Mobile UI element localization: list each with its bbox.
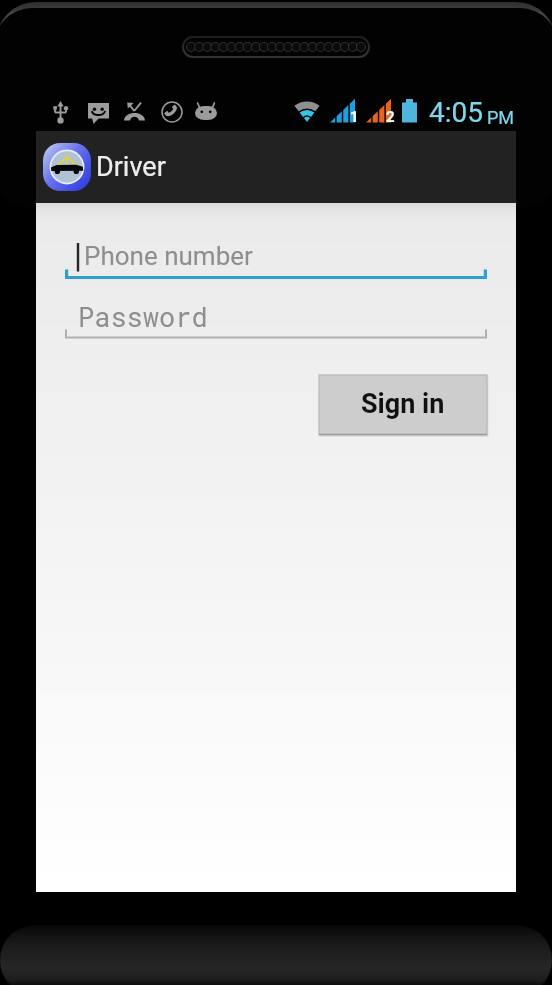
staticText: Phone number bbox=[84, 241, 253, 271]
button[interactable]: Phone number bbox=[65, 231, 487, 279]
staticText: Sign in bbox=[361, 388, 445, 420]
staticText: 4:05 bbox=[429, 96, 483, 129]
staticText: Driver bbox=[96, 151, 166, 183]
staticText: PM bbox=[487, 107, 515, 128]
staticText: Password bbox=[78, 299, 208, 335]
staticText: 1 bbox=[350, 108, 359, 126]
button[interactable]: Password bbox=[65, 291, 487, 339]
button[interactable]: App icon bbox=[43, 143, 91, 191]
button[interactable]: Sign in bbox=[319, 375, 487, 435]
staticText: 2 bbox=[386, 108, 395, 126]
